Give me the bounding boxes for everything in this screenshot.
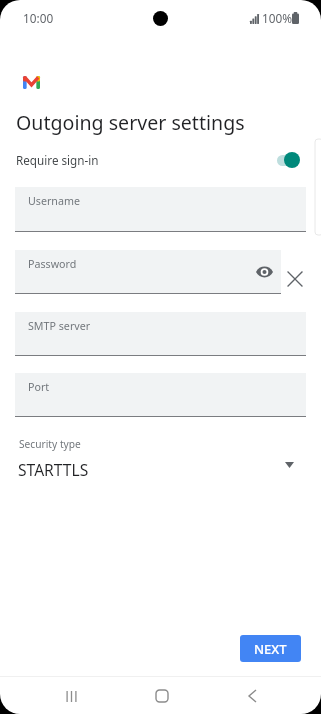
button[interactable]: Require sign-in <box>0 147 321 173</box>
staticText: 100% <box>262 10 293 26</box>
button[interactable]: Require sign-in toggle <box>277 152 300 168</box>
button[interactable]: STARTTLS <box>0 457 321 481</box>
staticText: STARTTLS <box>18 459 89 480</box>
button[interactable]: Show password <box>254 262 274 282</box>
staticText: SMTP server <box>28 319 91 334</box>
button[interactable]: SMTP server <box>15 312 306 356</box>
button[interactable]: Recent apps <box>51 676 91 714</box>
staticText: Security type <box>19 437 81 451</box>
staticText: Username <box>28 194 80 209</box>
button[interactable]: NEXT <box>240 635 301 662</box>
staticText: 10:00 <box>23 10 54 26</box>
button[interactable]: Username <box>15 187 306 232</box>
staticText: Outgoing server settings <box>16 109 245 136</box>
button[interactable]: Password <box>15 250 281 294</box>
button[interactable]: Clear password <box>286 270 303 287</box>
button[interactable]: Home <box>142 676 182 714</box>
staticText: Port <box>28 380 50 395</box>
button[interactable]: Back <box>232 676 272 714</box>
staticText: NEXT <box>254 640 287 658</box>
button[interactable]: Port <box>15 373 306 417</box>
staticText: Password <box>28 257 77 272</box>
staticText: Require sign-in <box>16 152 99 168</box>
